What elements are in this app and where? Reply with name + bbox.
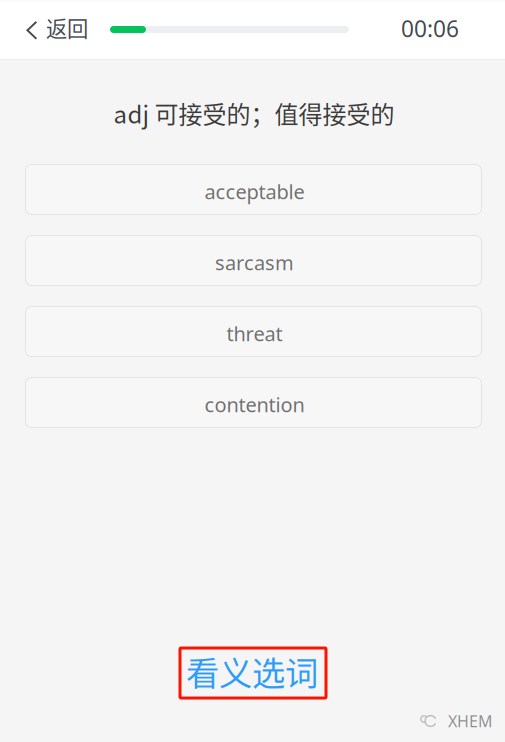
button[interactable]: 看义选词 [180,648,326,698]
staticText: adj 可接受的；值得接受的 [113,96,394,130]
button[interactable]: threat [25,306,481,356]
button[interactable]: sarcasm [25,235,481,285]
staticText: threat [226,320,282,347]
staticText: acceptable [204,178,304,205]
button[interactable]: contention [25,377,481,427]
staticText: 返回 [46,12,88,43]
staticText: sarcasm [215,249,294,276]
button[interactable]: 返回 [26,7,96,51]
staticText: contention [204,391,304,418]
staticText: 看义选词 [186,647,318,695]
staticText: 00:06 [401,13,459,44]
staticText: XHEM [448,710,493,732]
button[interactable]: acceptable [25,164,481,214]
